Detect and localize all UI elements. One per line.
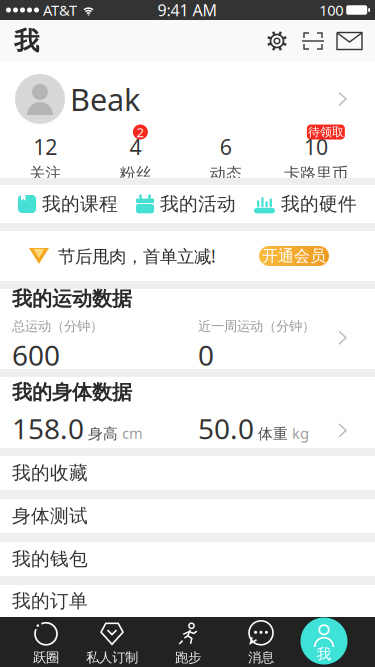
- staticText: 我的订单: [12, 589, 88, 612]
- button[interactable]: 私人订制: [86, 622, 138, 666]
- button[interactable]: 我的活动: [136, 192, 236, 215]
- staticText: 2: [136, 123, 144, 141]
- button[interactable]: 消息: [248, 622, 274, 666]
- staticText: 开通会员: [262, 246, 326, 266]
- button[interactable]: 10: [271, 132, 361, 183]
- staticText: 0: [198, 336, 214, 374]
- staticText: 私人订制: [86, 649, 138, 666]
- button[interactable]: 跃圈: [33, 622, 59, 666]
- staticText: 50.0: [198, 410, 254, 447]
- staticText: 我: [316, 645, 331, 663]
- staticText: 4: [129, 132, 141, 161]
- staticText: 600: [12, 336, 60, 374]
- staticText: 体重: [258, 425, 288, 443]
- button[interactable]: 我的课程: [18, 192, 118, 215]
- button[interactable]: 我: [300, 617, 347, 664]
- staticText: 我的收藏: [12, 461, 88, 484]
- button[interactable]: 设置: [266, 30, 288, 52]
- staticText: 粉丝: [119, 164, 151, 183]
- staticText: 关注: [29, 164, 61, 183]
- staticText: cm: [122, 423, 143, 443]
- staticText: 158.0: [12, 410, 84, 447]
- button[interactable]: 我的收藏: [0, 456, 375, 490]
- button[interactable]: 我的身体数据: [0, 377, 375, 448]
- staticText: 身体测试: [12, 504, 88, 527]
- staticText: 动态: [210, 164, 242, 183]
- staticText: 卡路里币: [284, 164, 348, 183]
- staticText: 我的活动: [160, 192, 236, 215]
- button[interactable]: 扫一扫: [302, 30, 324, 52]
- staticText: 我的运动数据: [12, 286, 132, 311]
- button[interactable]: 我的运动数据: [0, 289, 375, 369]
- button[interactable]: 开通会员: [259, 246, 329, 266]
- button[interactable]: 身体测试: [0, 499, 375, 533]
- staticText: 待领取: [308, 125, 344, 139]
- staticText: 节后甩肉，首单立减!: [58, 244, 216, 267]
- button[interactable]: 4: [90, 132, 180, 183]
- button[interactable]: 我的钱包: [0, 542, 375, 576]
- staticText: 我的钱包: [12, 547, 88, 570]
- staticText: 我: [14, 25, 39, 56]
- button[interactable]: 跑步: [175, 622, 201, 666]
- staticText: Beak: [70, 79, 140, 119]
- staticText: 10: [304, 132, 328, 161]
- staticText: 我的课程: [42, 192, 118, 215]
- button[interactable]: 消息邮件: [337, 30, 362, 52]
- staticText: 我的硬件: [281, 192, 357, 215]
- staticText: 总运动（分钟）: [12, 318, 103, 334]
- button[interactable]: Beak: [0, 62, 375, 124]
- staticText: 跑步: [175, 649, 201, 666]
- staticText: 近一周运动（分钟）: [198, 318, 315, 334]
- button[interactable]: 我的订单: [0, 585, 375, 617]
- staticText: 身高: [88, 425, 118, 443]
- button[interactable]: 我的硬件: [254, 192, 357, 215]
- staticText: 6: [220, 132, 232, 161]
- staticText: 我的身体数据: [12, 380, 132, 405]
- button[interactable]: 6: [180, 132, 271, 183]
- staticText: 消息: [248, 649, 274, 666]
- button[interactable]: 12: [0, 132, 90, 183]
- staticText: 9:41 AM: [157, 0, 217, 21]
- staticText: 跃圈: [33, 649, 59, 666]
- staticText: 100: [319, 0, 343, 20]
- staticText: kg: [292, 423, 309, 443]
- staticText: AT&T: [43, 0, 77, 20]
- staticText: 12: [33, 132, 57, 161]
